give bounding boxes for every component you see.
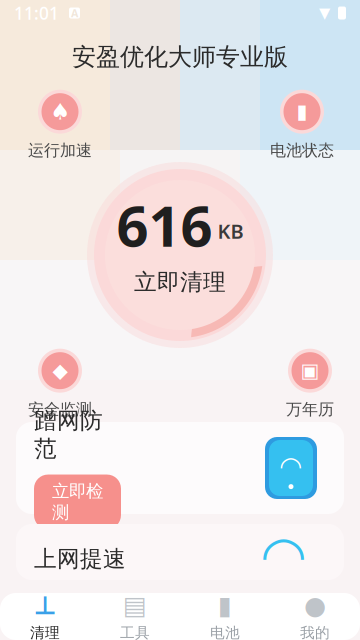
staticText: 616	[116, 188, 212, 262]
staticText: ⊥	[33, 591, 56, 620]
staticText: ♠	[50, 99, 70, 124]
staticText: ▼	[319, 5, 330, 21]
staticText: 11:01	[14, 1, 59, 24]
staticText: 清理	[30, 624, 60, 640]
staticText: 我的	[300, 624, 330, 640]
staticText: ◆	[52, 359, 67, 382]
button[interactable]: ▣	[286, 349, 334, 419]
button[interactable]: 616	[85, 162, 275, 348]
staticText: ▮	[218, 591, 232, 620]
button[interactable]: ◆	[28, 349, 92, 419]
button[interactable]: ⊥	[0, 593, 90, 640]
staticText: 蹭网防范	[34, 407, 103, 463]
staticText: 运行加速	[28, 141, 92, 160]
button[interactable]: ♠	[28, 90, 92, 160]
button[interactable]: ●	[270, 593, 360, 640]
staticText: ▤	[123, 591, 147, 620]
staticText: ▮	[296, 100, 307, 123]
staticText: KB	[217, 218, 243, 244]
button[interactable]: 蹭网防范	[16, 422, 344, 514]
button[interactable]: 上网提速	[16, 524, 344, 580]
staticText: 立即清理	[134, 268, 226, 296]
button[interactable]: ▮	[270, 90, 334, 160]
staticText: ●	[304, 591, 326, 620]
staticText: ▣	[300, 359, 319, 382]
staticText: 电池	[210, 624, 240, 640]
staticText: A	[71, 6, 78, 20]
button[interactable]: ▤	[90, 593, 180, 640]
staticText: 工具	[120, 624, 150, 640]
staticText: ◠	[263, 525, 304, 585]
staticText: 万年历	[286, 400, 334, 419]
staticText: 立即检测	[52, 481, 103, 523]
staticText: 安全监测	[28, 400, 92, 419]
staticText: 电池状态	[270, 141, 334, 160]
button[interactable]: ▮	[180, 593, 270, 640]
staticText: ◠	[280, 451, 301, 481]
staticText: 上网提速	[34, 545, 126, 573]
staticText: 安盈优化大师专业版	[72, 42, 288, 72]
